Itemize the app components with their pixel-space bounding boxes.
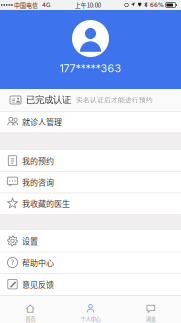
staticText: 个人中心 [80,315,100,323]
button[interactable]: 我的咨询 [0,171,181,193]
staticText: 我收藏的医生 [22,198,70,209]
button[interactable]: ? [0,252,181,273]
staticText: 中国电信 [14,1,38,9]
button[interactable]: 已完成认证 [0,89,181,111]
button[interactable]: 意见反馈 [0,273,181,295]
button[interactable]: 设置 [0,230,181,252]
staticText: 已完成认证 [26,94,71,106]
button[interactable]: 我收藏的医生 [0,193,181,214]
staticText: 我的预约 [22,155,54,166]
button[interactable]: 首页 [0,296,60,323]
staticText: 首页 [25,315,35,323]
staticText: 就诊人管理 [22,116,62,127]
staticText: 177*****363 [59,62,121,75]
staticText: 消息 [146,315,156,323]
staticText: 实名认证后才能进行预约 [76,96,153,104]
staticText: 4G [42,2,51,8]
staticText: 帮助中心 [22,257,54,268]
staticText: 意见反馈 [22,278,54,290]
button[interactable]: 消息 [121,296,181,323]
staticText: 66% [150,2,164,8]
button[interactable]: 个人中心 [60,296,121,323]
staticText: ? [10,258,14,267]
button[interactable]: 就诊人管理 [0,111,181,132]
staticText: 我的咨询 [22,176,54,188]
button[interactable]: 我的预约 [0,150,181,171]
staticText: 设置 [22,235,38,247]
staticText: 上午10:00 [75,1,101,9]
